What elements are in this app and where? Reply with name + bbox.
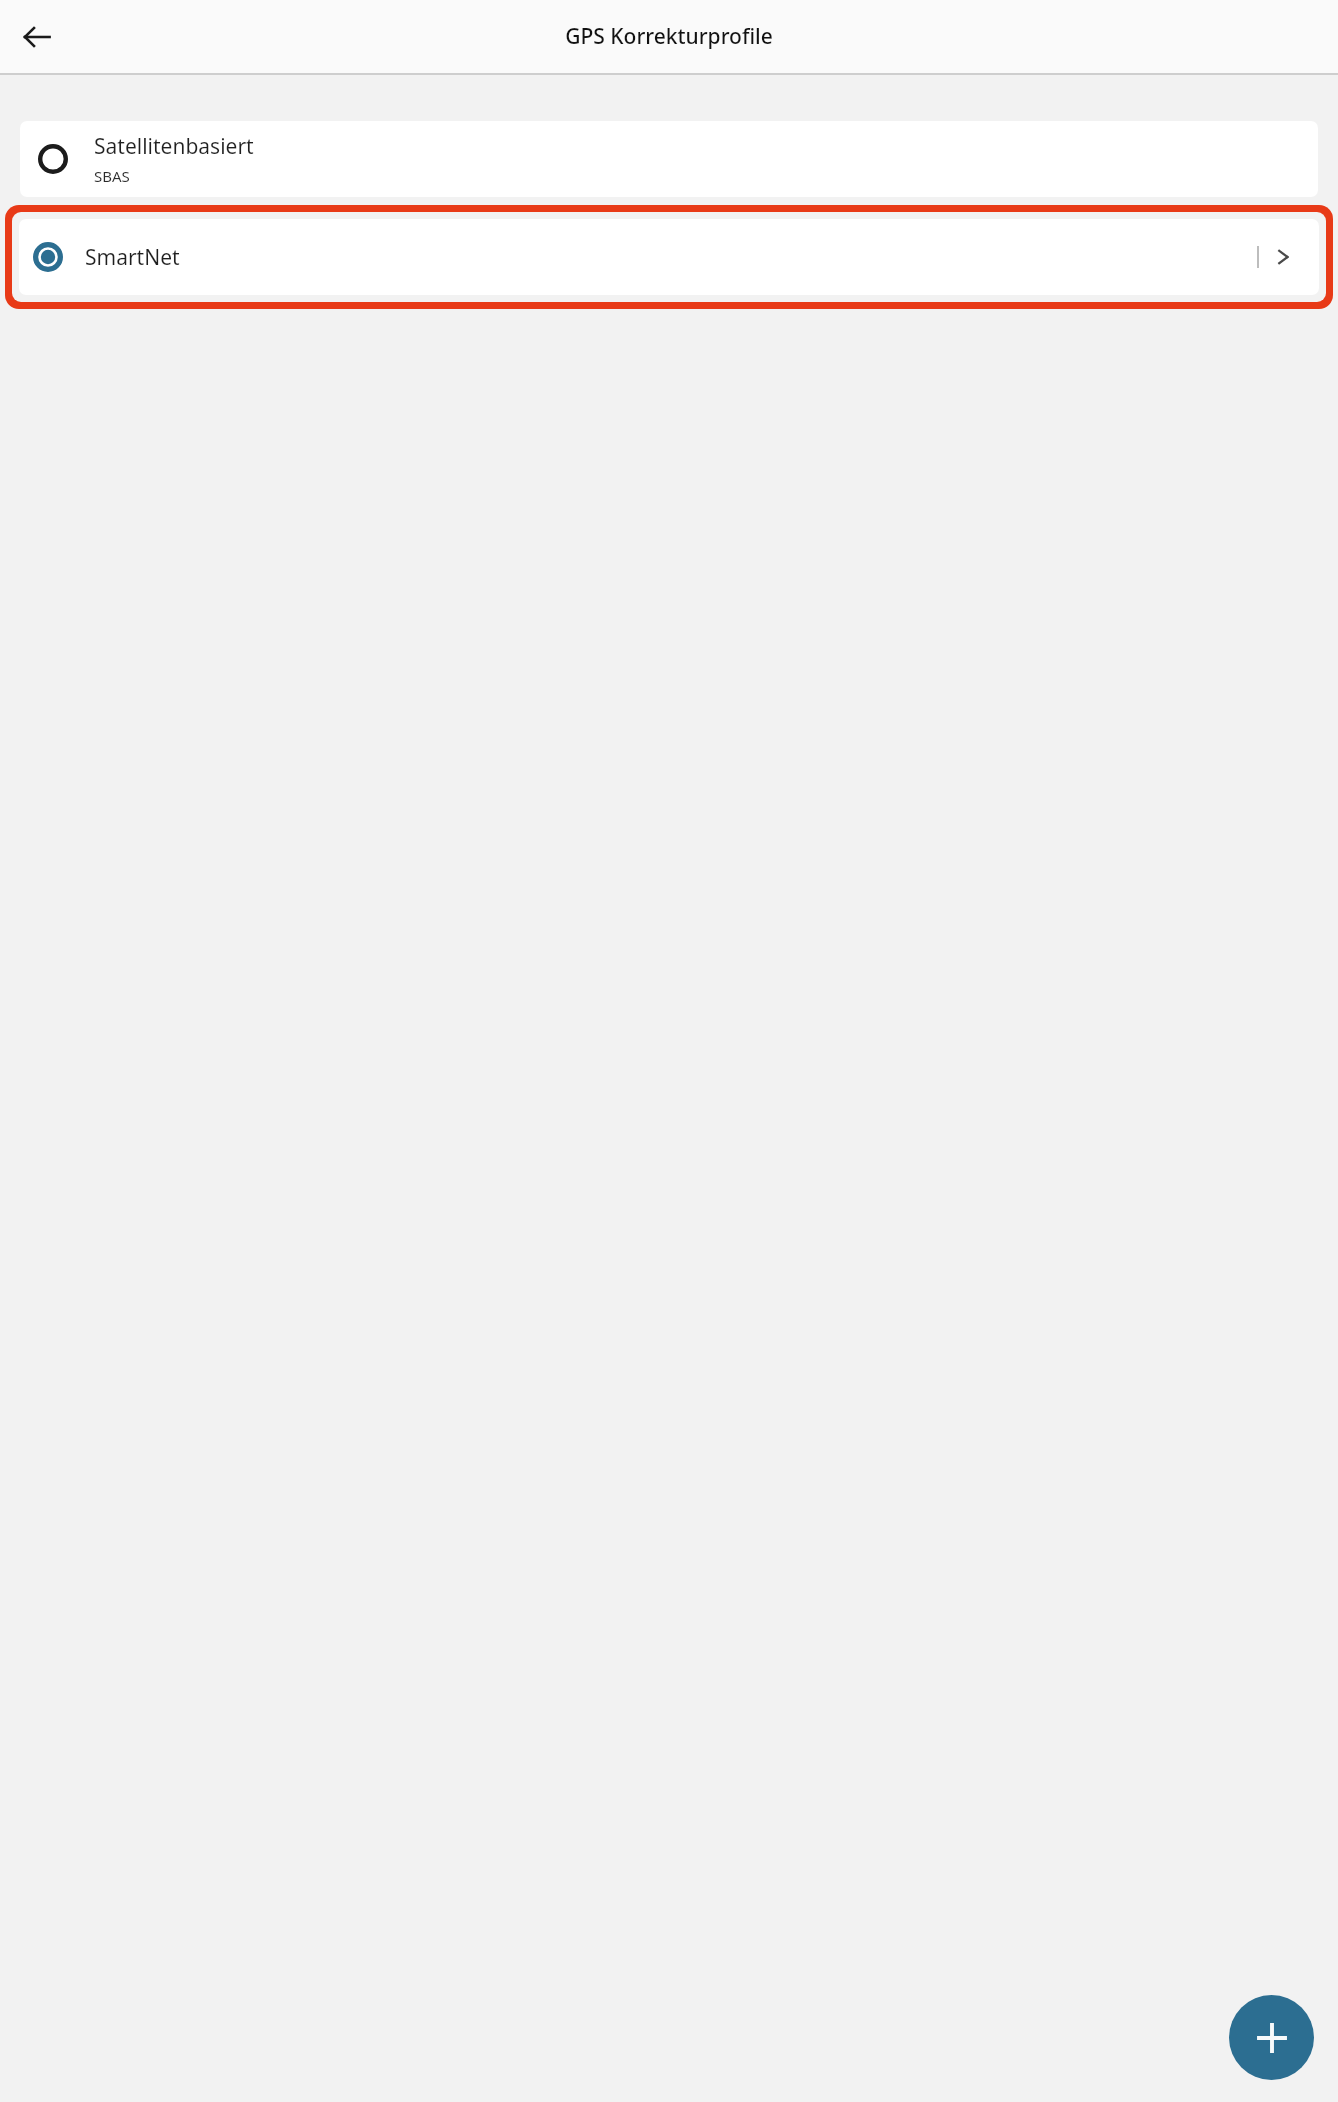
- staticText: GPS Korrekturprofile: [565, 22, 773, 51]
- staticText: Satellitenbasiert: [94, 132, 254, 161]
- staticText: SmartNet: [85, 243, 1257, 272]
- button[interactable]: Add profile: [1229, 1995, 1314, 2080]
- staticText: SBAS: [94, 166, 130, 186]
- button[interactable]: Back: [13, 13, 61, 61]
- button[interactable]: Open SmartNet settings: [1259, 233, 1307, 281]
- button[interactable]: SmartNet: [19, 219, 1319, 295]
- button[interactable]: Satellitenbasiert: [20, 121, 1318, 197]
